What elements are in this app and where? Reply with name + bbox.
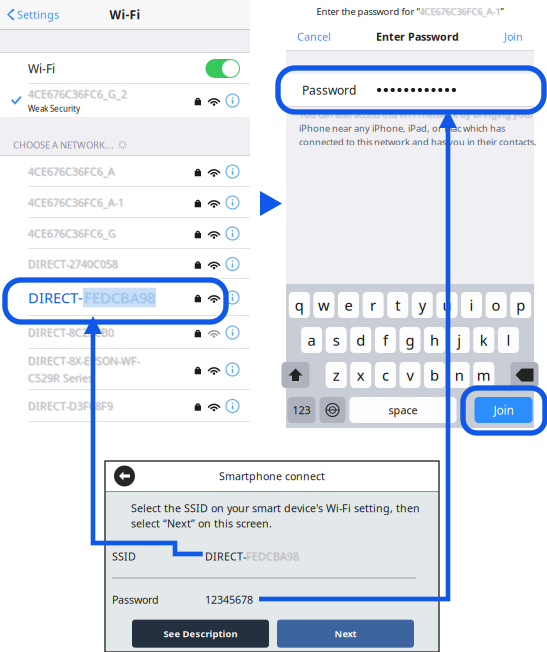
button[interactable]: Connected network [0,84,250,117]
staticText: g [405,330,414,350]
button[interactable]: Shift [281,362,309,388]
staticText: space [388,403,417,417]
staticText: 4CE676C36FC6_A-1 [29,196,125,210]
staticText: Enter Password [376,29,459,44]
staticText: Smartphone connect [219,469,325,483]
staticText: n [455,365,464,385]
staticText: FEDCBA98 [246,549,299,563]
button[interactable]: Wi-Fi toggle [0,53,250,84]
button[interactable]: w [313,292,334,318]
button[interactable]: p [510,292,531,318]
button[interactable]: s [326,327,347,353]
staticText: c [382,365,389,385]
staticText: Wi-Fi [109,6,140,22]
staticText: SSID [112,549,136,563]
button[interactable]: Wi-Fi network [0,390,250,422]
button[interactable]: f [375,327,396,353]
staticText: DIRECT- [28,288,83,307]
button[interactable]: o [486,292,507,318]
staticText: o [492,295,501,315]
staticText: 4CE676C36FC6_G [27,226,115,240]
staticText: Select the SSID on your smart device's W… [131,501,420,515]
button[interactable]: Back [105,465,135,486]
button[interactable]: t [387,292,408,318]
button[interactable]: i [461,292,482,318]
staticText: j [457,330,461,350]
staticText: z [333,365,340,385]
button[interactable]: Switch keyboard [319,397,345,423]
staticText: FEDCBA98 [247,550,300,564]
button[interactable]: Wi-Fi network [0,218,250,249]
staticText: Next [334,627,356,640]
button[interactable]: space [349,397,456,423]
staticText: 4CE676C36FC6_A [28,164,115,179]
staticText: 123 [292,403,310,417]
staticText: 4CE676C36FC6_G [28,226,116,241]
button[interactable]: Join [474,397,532,423]
button[interactable]: Wi-Fi network [0,316,250,349]
staticText: 4CE676C36FC6_A-1 [419,5,500,18]
button[interactable]: k [473,327,494,353]
button[interactable]: r [363,292,384,318]
staticText: Wi-Fi [28,60,55,76]
button[interactable]: d [350,327,371,353]
button[interactable]: h [424,327,445,353]
staticText: 4CE676C36FC6_G_2 [27,86,126,101]
button[interactable]: u [436,292,457,318]
button[interactable]: y [412,292,433,318]
button[interactable]: z [326,362,347,388]
staticText: DIRECT-D3F08F9 [27,398,112,412]
staticText: C529R Series [28,371,93,385]
staticText: DIRECT- [205,549,246,563]
button[interactable]: 123 [287,397,315,423]
button[interactable]: a [301,327,322,353]
staticText: Settings [17,7,59,22]
button[interactable]: See Description [132,620,269,648]
button[interactable]: m [473,362,494,388]
staticText: 4CE676C36FC6_A [27,164,114,178]
staticText: 12345678 [205,592,253,607]
button[interactable]: DIRECT network [0,279,250,316]
staticText: Join [493,402,513,418]
staticText: 4CE676C36FC6_G_2 [29,88,128,102]
button[interactable]: Cancel [297,23,331,50]
button[interactable]: e [338,292,359,318]
button[interactable]: l [498,327,519,353]
button[interactable]: Wi-Fi network [0,156,250,187]
button[interactable]: Wi-Fi network [0,349,250,390]
staticText: DIRECT-2740C058 [27,256,117,270]
staticText: You can also access this Wi-Fi network b… [298,107,533,120]
staticText: You can also access this Wi-Fi network b… [299,108,534,120]
staticText: iPhone near any iPhone, iPad, or Mac whi… [299,122,505,134]
staticText: 4CE676C36FC6_A [29,165,116,179]
button[interactable]: q [289,292,310,318]
button[interactable]: Join [504,23,523,50]
staticText: DIRECT-8C23CB0 [27,325,113,339]
staticText: d [356,330,365,350]
button[interactable]: c [375,362,396,388]
button[interactable]: j [449,327,470,353]
button[interactable]: b [424,362,445,388]
staticText: FEDCBA98 [83,287,154,307]
staticText: DIRECT-2740C058 [28,257,118,271]
staticText: C529R Series [27,370,92,385]
button[interactable]: Password field [286,74,534,106]
button[interactable]: Next [277,620,414,648]
staticText: e [344,295,352,315]
button[interactable]: Settings [0,0,59,29]
button[interactable]: x [350,362,371,388]
staticText: DIRECT-8X-EPSON-WF- [29,354,141,369]
button[interactable]: Wi-Fi network [0,249,250,279]
button[interactable]: Wi-Fi network [0,187,250,218]
button[interactable]: v [399,362,420,388]
button[interactable]: Delete [510,362,538,388]
button[interactable]: g [399,327,420,353]
button[interactable]: n [449,362,470,388]
staticText: You can also access this Wi-Fi network b… [300,109,535,121]
staticText: ” [500,5,503,18]
staticText: b [430,365,439,385]
staticText: q [295,295,304,315]
staticText: Cancel [297,29,331,44]
staticText: Password [112,592,159,607]
staticText: s [333,330,340,350]
